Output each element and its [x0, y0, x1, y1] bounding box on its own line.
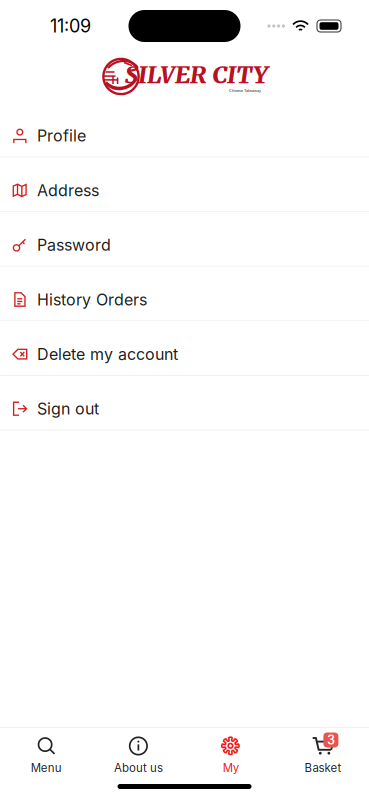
staticText: Basket — [304, 761, 341, 775]
staticText: History Orders — [37, 290, 147, 309]
staticText: Address — [37, 181, 99, 200]
button[interactable]: Profile — [0, 103, 369, 158]
staticText: SILVER CITY — [125, 60, 268, 89]
button[interactable]: Delete my account — [0, 321, 369, 376]
staticText: 11:09 — [50, 15, 91, 37]
button[interactable]: History Orders — [0, 267, 369, 321]
staticText: Password — [37, 235, 111, 255]
button[interactable]: 3 — [277, 735, 369, 775]
staticText: Profile — [37, 126, 86, 145]
button[interactable]: Menu — [0, 735, 92, 775]
staticText: My — [223, 761, 239, 775]
button[interactable]: Sign out — [0, 376, 369, 431]
staticText: Menu — [31, 761, 62, 775]
button[interactable]: About us — [92, 735, 184, 775]
staticText: About us — [114, 761, 163, 775]
staticText: 3 — [327, 732, 335, 748]
button[interactable]: Address — [0, 158, 369, 212]
staticText: Sign out — [37, 399, 99, 418]
staticText: Delete my account — [37, 344, 178, 364]
staticText: Chinese Takeaway — [229, 89, 261, 93]
button[interactable]: My — [184, 735, 277, 775]
button[interactable]: Password — [0, 212, 369, 267]
